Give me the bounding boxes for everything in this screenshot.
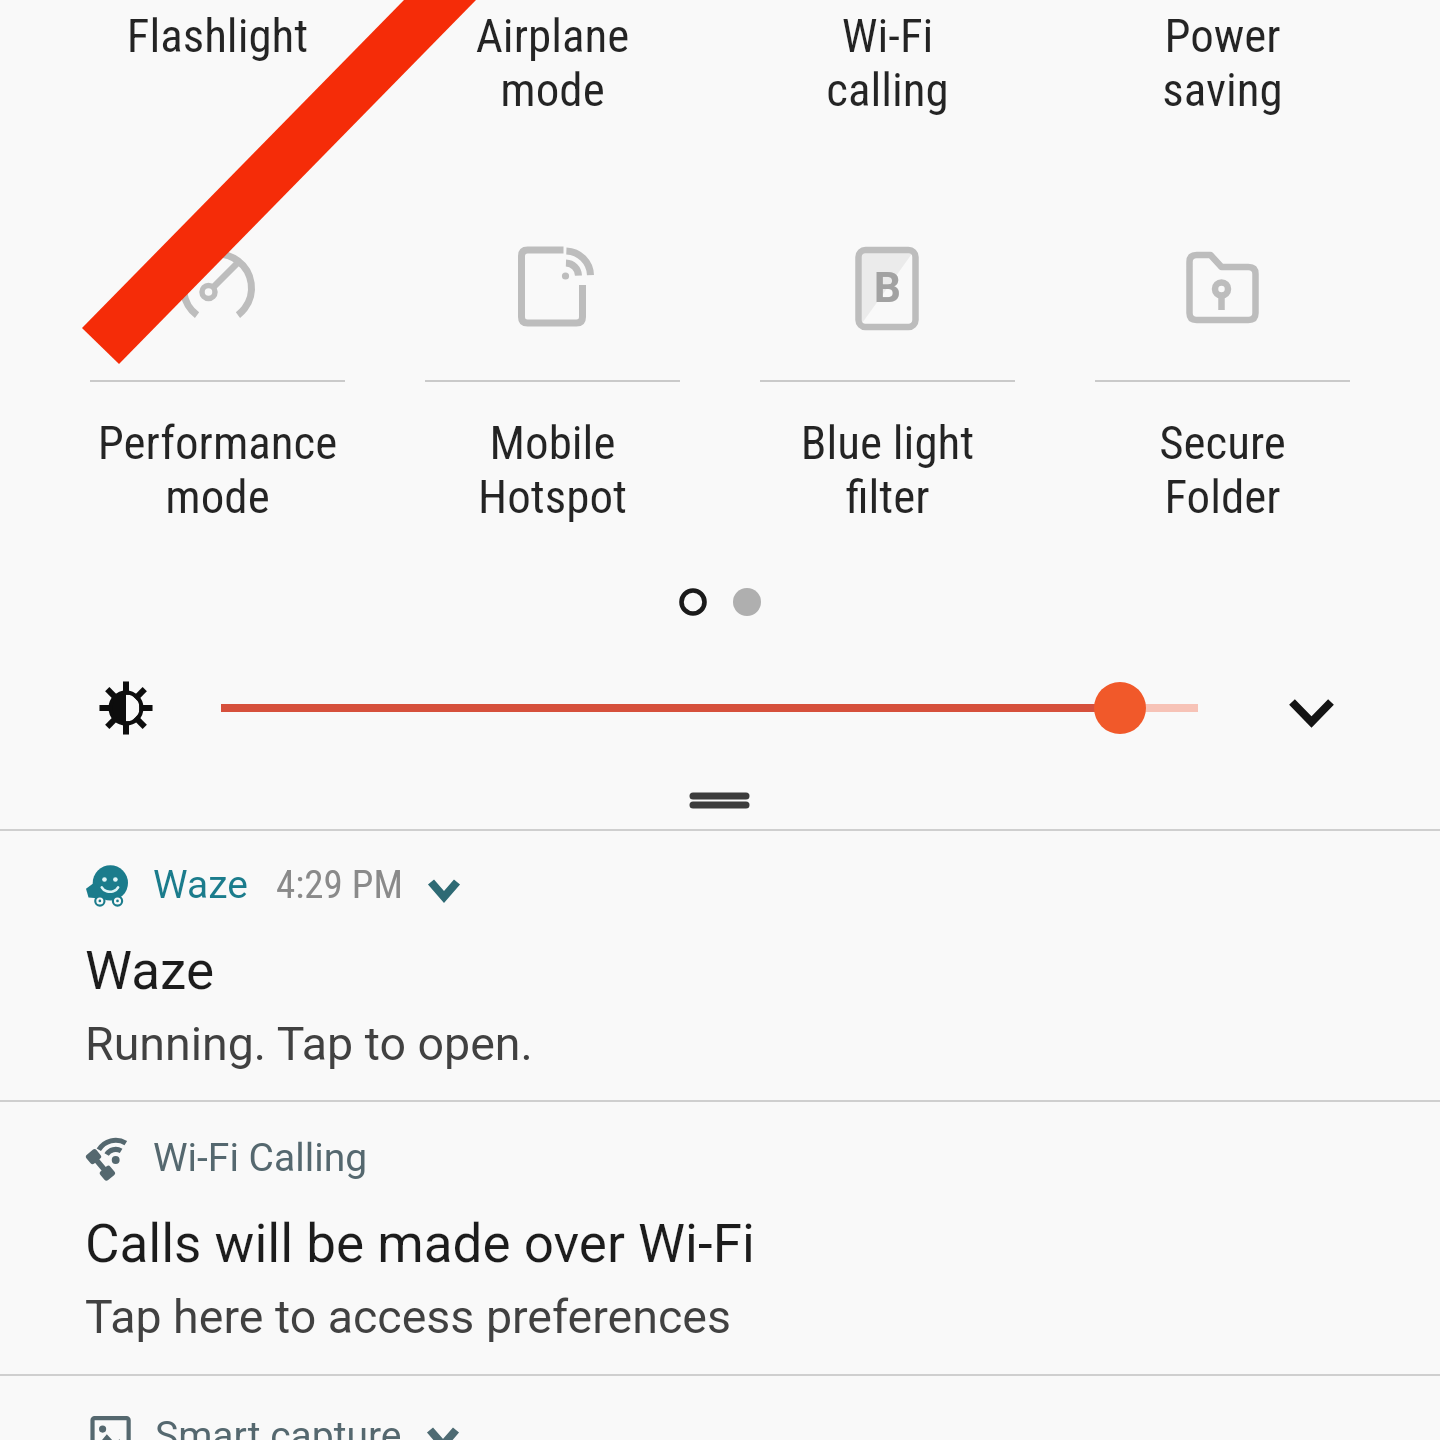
staticText: 4:29 PM [276,862,403,908]
button[interactable]: Smart capture [0,1376,1440,1440]
button[interactable] [50,226,385,540]
staticText: Running. Tap to open. [85,1017,533,1071]
staticText: Airplane mode [385,8,720,117]
staticText: Blue light filter [720,415,1055,524]
staticText: Tap here to access preferences [85,1290,731,1344]
button[interactable]: Brightness [93,675,159,741]
button[interactable]: Expand Waze notification [412,854,476,918]
button[interactable] [720,226,1055,540]
button[interactable] [50,0,385,133]
staticText: Waze [153,862,248,908]
button[interactable]: Brightness slider [190,660,1225,756]
button[interactable]: Drag handle [670,780,770,826]
button[interactable]: Waze [0,831,1440,1102]
staticText: Mobile Hotspot [385,415,720,524]
button[interactable] [720,0,1055,133]
staticText: Waze [85,940,214,1002]
button[interactable] [1055,226,1390,540]
button[interactable] [385,226,720,540]
staticText: Smart capture [155,1413,402,1440]
staticText: Performance mode [50,415,385,524]
staticText: Wi-Fi calling [720,8,1055,117]
button[interactable] [1055,0,1390,133]
button[interactable]: Expand quick settings [1270,668,1350,748]
button[interactable]: Page 2 [727,582,767,622]
button[interactable]: Expand Smart capture notification [411,1402,475,1440]
staticText: Secure Folder [1055,415,1390,524]
button[interactable]: Page 1 [673,582,713,622]
button[interactable] [385,0,720,133]
staticText: Flashlight [50,8,385,63]
staticText: Calls will be made over Wi-Fi [85,1213,755,1275]
button[interactable]: Wi-Fi Calling [0,1102,1440,1376]
staticText: Power saving [1055,8,1390,117]
staticText: B [874,263,901,312]
staticText: Wi-Fi Calling [153,1135,368,1181]
